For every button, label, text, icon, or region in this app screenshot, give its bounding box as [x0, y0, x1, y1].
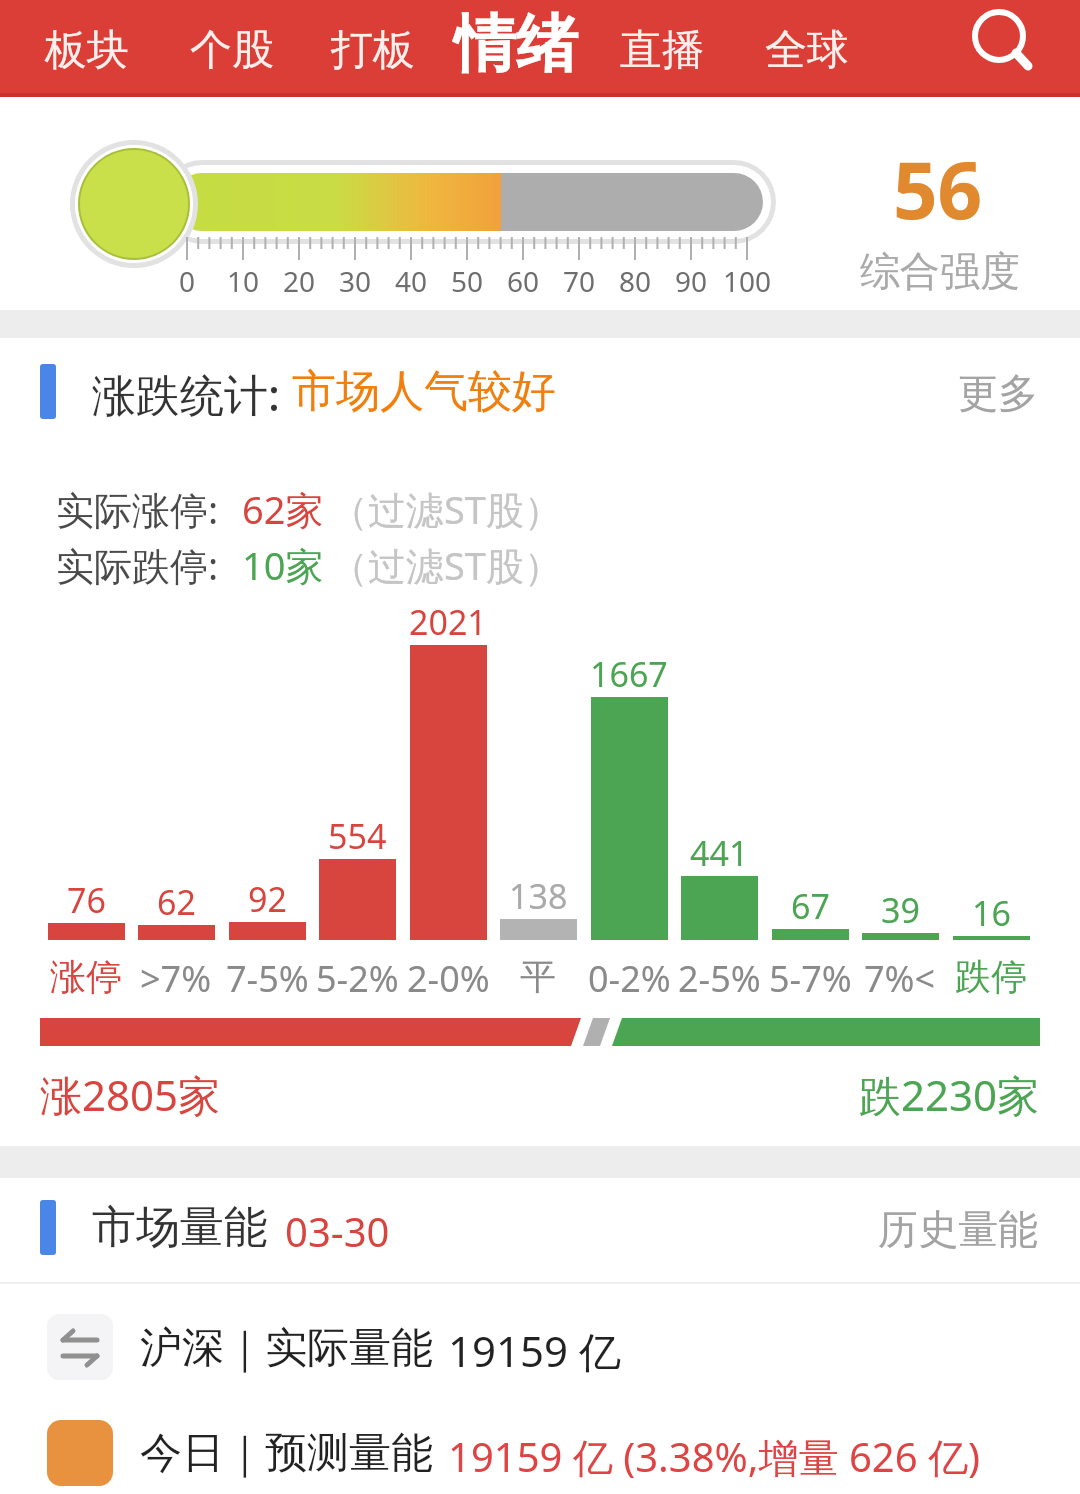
staticText: 5-7% [769, 954, 852, 1003]
staticText: 03-30 [285, 1204, 390, 1258]
staticText: 跌停 [955, 954, 1027, 999]
button[interactable]: 沪深｜实际量能 [0, 1300, 1080, 1395]
staticText: 80 [619, 262, 652, 300]
button[interactable]: 直播 [620, 24, 704, 77]
staticText: 62家 [242, 483, 324, 535]
staticText: 0 [179, 262, 196, 300]
staticText: 19159 亿 (3.38%,增量 626 亿) [448, 1429, 980, 1484]
button[interactable]: 板块 [45, 24, 129, 77]
staticText: 1667 [590, 651, 668, 697]
button[interactable]: 情绪 [454, 5, 578, 83]
staticText: 20 [283, 262, 316, 300]
staticText: 2-5% [678, 954, 761, 1003]
staticText: 76 [67, 877, 106, 923]
staticText: 16 [972, 890, 1011, 936]
staticText: 100 [723, 262, 772, 300]
staticText: 62 [157, 879, 196, 925]
staticText: 138 [509, 873, 568, 919]
staticText: 今日｜预测量能 [140, 1427, 434, 1480]
staticText: 涨停 [50, 954, 122, 999]
staticText: 7-5% [226, 954, 309, 1003]
staticText: 19159 亿 [448, 1322, 622, 1379]
staticText: 历史量能 [878, 1204, 1038, 1254]
staticText: 实际涨停: [56, 483, 219, 535]
staticText: 跌2230家 [859, 1066, 1040, 1123]
staticText: 2-0% [407, 954, 490, 1003]
staticText: 涨2805家 [40, 1066, 221, 1123]
staticText: 67 [791, 883, 830, 929]
staticText: 70 [563, 262, 596, 300]
staticText: 441 [690, 830, 749, 876]
staticText: 综合强度 [860, 246, 1020, 296]
staticText: 30 [339, 262, 372, 300]
button[interactable] [960, 2, 1040, 82]
staticText: 平 [520, 954, 556, 999]
staticText: 554 [328, 813, 387, 859]
staticText: 92 [248, 876, 287, 922]
staticText: 0-2% [588, 954, 671, 1003]
staticText: 5-2% [316, 954, 399, 1003]
button[interactable]: 个股 [190, 24, 274, 77]
button[interactable]: 涨跌统计: [0, 348, 1080, 448]
button[interactable]: 市场量能 [0, 1186, 1080, 1276]
staticText: 90 [675, 262, 708, 300]
button[interactable]: 今日｜预测量能 [0, 1405, 1080, 1494]
staticText: 市场量能 [92, 1200, 268, 1255]
staticText: （过滤ST股） [330, 483, 562, 535]
staticText: 实际跌停: [56, 539, 219, 591]
button[interactable]: 打板 [331, 24, 415, 77]
staticText: （过滤ST股） [330, 539, 562, 591]
staticText: 50 [451, 262, 484, 300]
staticText: 39 [881, 887, 920, 933]
staticText: 市场人气较好 [292, 364, 556, 419]
staticText: 10 [227, 262, 260, 300]
staticText: 涨跌统计: [92, 364, 280, 424]
staticText: 10家 [242, 539, 324, 591]
staticText: 56 [893, 136, 983, 242]
staticText: 7%< [864, 954, 936, 1003]
staticText: >7% [140, 954, 212, 1003]
staticText: 更多 [958, 368, 1038, 418]
button[interactable]: 全球 [765, 24, 849, 77]
staticText: 沪深｜实际量能 [140, 1322, 434, 1375]
staticText: 60 [507, 262, 540, 300]
staticText: 2021 [409, 599, 487, 645]
staticText: 40 [395, 262, 428, 300]
